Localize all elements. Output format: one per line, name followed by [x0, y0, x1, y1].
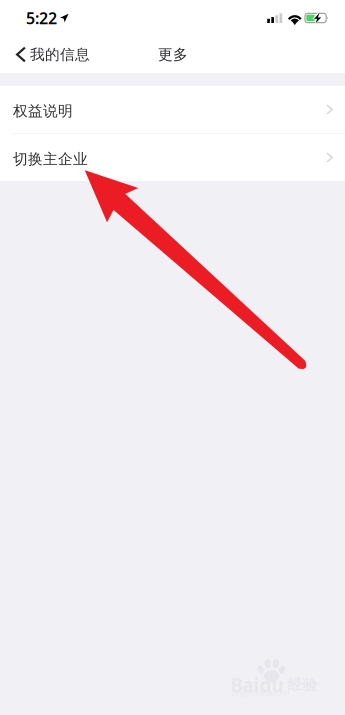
staticText: 权益说明 — [13, 102, 73, 120]
staticText: 我的信息 — [30, 45, 90, 63]
button[interactable]: 切换主企业 — [0, 134, 345, 181]
staticText: 经验 — [287, 676, 317, 694]
staticText: 切换主企业 — [13, 150, 88, 168]
staticText: 更多 — [158, 45, 188, 63]
staticText: jingyan.baidu.com — [231, 689, 289, 697]
button[interactable]: 我的信息 — [0, 36, 100, 73]
staticText: 5:22 — [26, 7, 57, 29]
button[interactable]: 权益说明 — [0, 86, 345, 133]
staticText: Baidu — [230, 673, 283, 697]
